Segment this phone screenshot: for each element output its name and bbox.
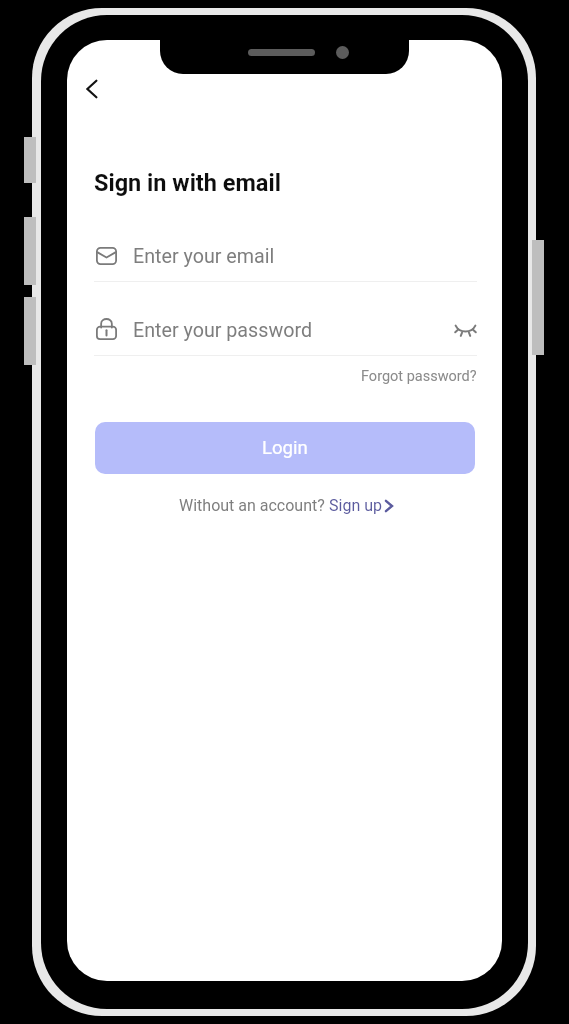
button[interactable]: Enter your password: [94, 307, 478, 355]
staticText: Sign in with email: [94, 169, 281, 197]
staticText: Sign up: [329, 496, 382, 515]
button[interactable]: Show password: [442, 307, 488, 353]
staticText: Enter your email: [133, 245, 275, 268]
button[interactable]: Sign up: [329, 496, 396, 515]
button[interactable]: Enter your email: [94, 233, 478, 281]
staticText: Enter your password: [133, 319, 313, 342]
button[interactable]: Back: [69, 66, 115, 112]
button[interactable]: Forgot password?: [355, 364, 477, 388]
staticText: Forgot password?: [361, 368, 477, 385]
staticText: Login: [262, 437, 308, 459]
staticText: Without an account?: [179, 496, 329, 515]
button[interactable]: Login: [95, 422, 475, 474]
